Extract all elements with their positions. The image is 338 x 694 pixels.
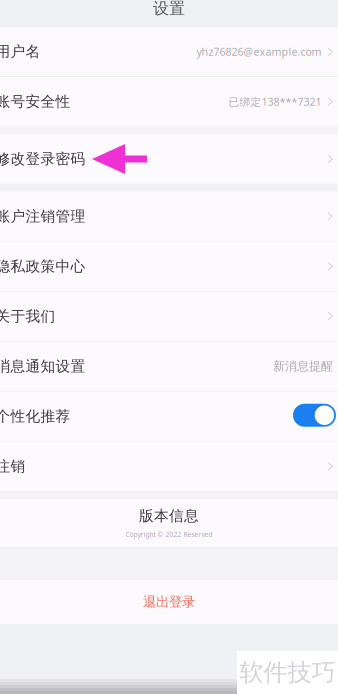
staticText: 版本信息 (139, 507, 199, 525)
staticText: 关于我们 (0, 307, 55, 325)
button[interactable]: 关于我们 (0, 292, 338, 341)
button[interactable]: 消息通知设置 (0, 342, 338, 391)
staticText: 已绑定138***7321 (228, 95, 321, 109)
staticText: 注销 (0, 457, 25, 475)
staticText: 退出登录 (143, 594, 195, 610)
button[interactable]: 隐私政策中心 (0, 242, 338, 291)
staticText: 隐私政策中心 (0, 257, 85, 275)
button[interactable]: 账户注销管理 (0, 192, 338, 241)
button[interactable]: 退出登录 (0, 580, 338, 624)
button[interactable]: 注销 (0, 442, 338, 491)
staticText: 修改登录密码 (0, 150, 85, 168)
staticText: 用户名 (0, 43, 40, 61)
staticText: 新消息提醒 (273, 359, 333, 374)
staticText: 消息通知设置 (0, 357, 85, 375)
button[interactable]: 账号安全性 (0, 77, 338, 126)
button[interactable]: 用户名 (0, 27, 338, 76)
staticText: yhz76826@example.com (196, 45, 321, 59)
staticText: 个性化推荐 (0, 407, 70, 425)
button[interactable]: 个性化推荐 (0, 392, 338, 441)
staticText: 账号安全性 (0, 93, 70, 111)
staticText: 账户注销管理 (0, 207, 85, 225)
button[interactable]: 修改登录密码 (0, 134, 338, 184)
staticText: 软件技巧 (239, 658, 335, 687)
staticText: 设置 (153, 0, 185, 18)
staticText: Copyright © 2022 Reserved (125, 530, 212, 539)
